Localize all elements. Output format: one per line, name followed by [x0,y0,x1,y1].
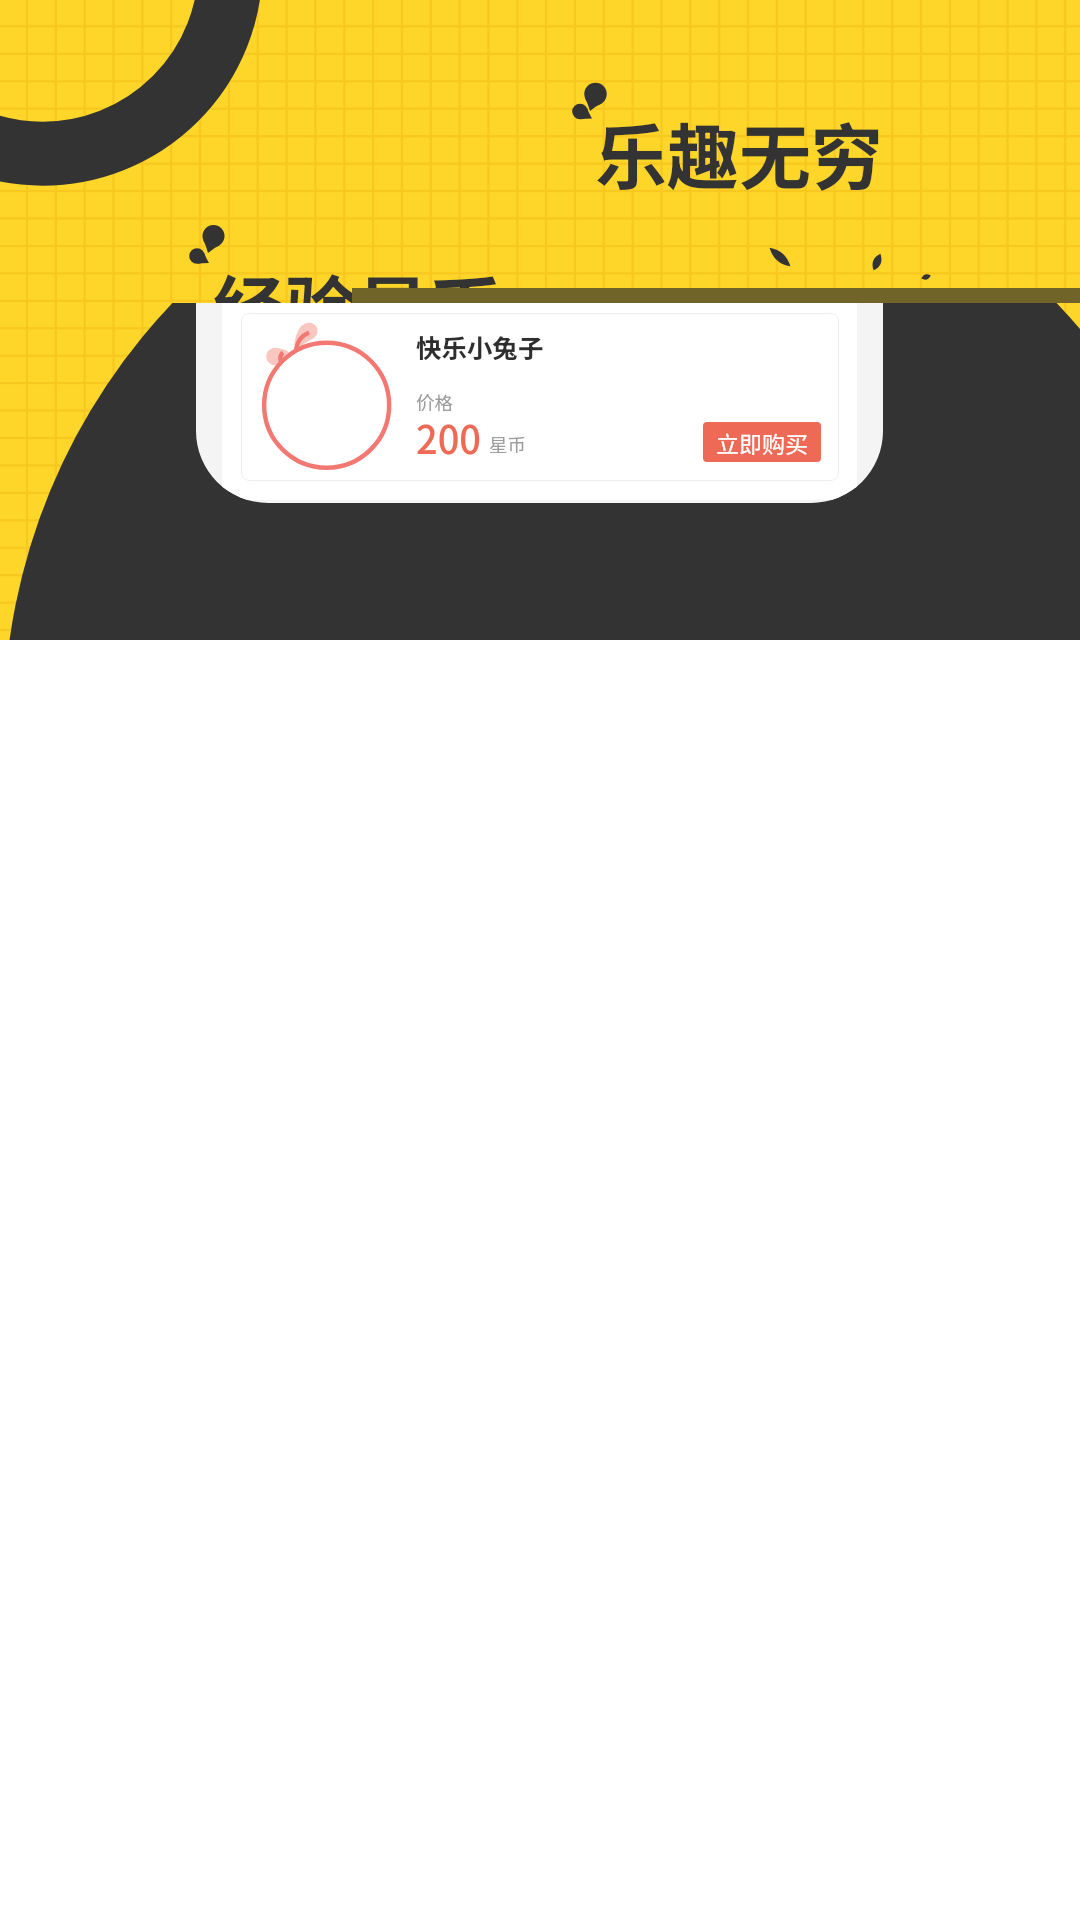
button[interactable]: 立即购买 [703,422,821,462]
button[interactable]: 快乐小兔子 [241,313,839,481]
staticText: 立即购买 [716,426,808,459]
staticText: 乐趣无穷 [595,100,884,204]
staticText: 星币 [489,431,527,458]
staticText: 200 [416,410,481,465]
staticText: 快乐小兔子 [416,328,544,365]
staticText: 价格 [416,389,454,416]
staticText: 经验星币 [213,252,502,356]
